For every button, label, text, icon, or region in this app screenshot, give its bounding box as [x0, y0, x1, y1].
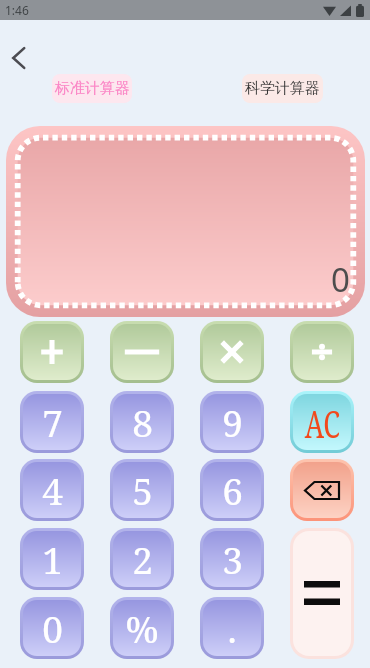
- staticText: 7: [42, 397, 63, 447]
- staticText: 1: [42, 534, 63, 584]
- button[interactable]: 4: [20, 459, 84, 521]
- button[interactable]: 2: [110, 528, 174, 590]
- button[interactable]: 1: [20, 528, 84, 590]
- staticText: 3: [222, 534, 243, 584]
- staticText: 9: [222, 397, 243, 447]
- staticText: 4: [42, 465, 63, 515]
- staticText: 0: [42, 603, 63, 653]
- staticText: AC: [305, 396, 340, 449]
- button[interactable]: 8: [110, 391, 174, 453]
- button[interactable]: Back: [6, 45, 32, 71]
- button[interactable]: 7: [20, 391, 84, 453]
- staticText: .: [227, 603, 237, 653]
- button[interactable]: 6: [200, 459, 264, 521]
- button[interactable]: 5: [110, 459, 174, 521]
- button[interactable]: 0: [6, 126, 365, 317]
- staticText: 1:46: [5, 2, 29, 18]
- button[interactable]: 标准计算器: [52, 74, 132, 103]
- staticText: 标准计算器: [55, 79, 130, 98]
- button[interactable]: Multiply: [200, 321, 264, 383]
- staticText: 2: [132, 534, 153, 584]
- button[interactable]: Minus: [110, 321, 174, 383]
- staticText: %: [125, 603, 159, 653]
- button[interactable]: 0: [20, 597, 84, 659]
- button[interactable]: 9: [200, 391, 264, 453]
- button[interactable]: Backspace: [290, 459, 354, 521]
- button[interactable]: Divide: [290, 321, 354, 383]
- staticText: 8: [132, 397, 153, 447]
- staticText: 6: [222, 465, 243, 515]
- staticText: 0: [331, 257, 350, 302]
- button[interactable]: %: [110, 597, 174, 659]
- staticText: 科学计算器: [245, 79, 320, 98]
- button[interactable]: 3: [200, 528, 264, 590]
- button[interactable]: Plus: [20, 321, 84, 383]
- staticText: 5: [132, 465, 153, 515]
- button[interactable]: .: [200, 597, 264, 659]
- button[interactable]: AC: [290, 391, 354, 453]
- button[interactable]: Equals: [290, 528, 354, 659]
- button[interactable]: 科学计算器: [242, 74, 323, 103]
